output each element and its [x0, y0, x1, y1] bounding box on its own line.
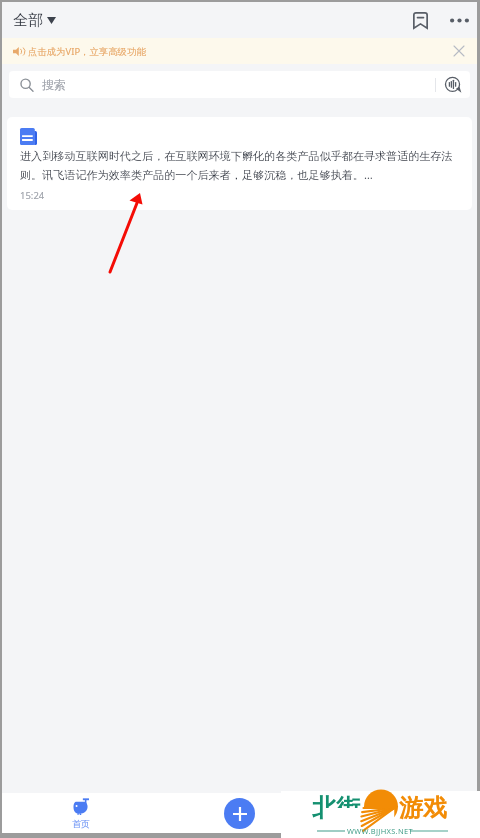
button[interactable]: 进入到移动互联网时代之后，在互联网环境下孵化的各类产品似乎都在寻求普适的生存法则… — [7, 117, 472, 210]
button[interactable]: Voice input — [436, 71, 470, 98]
staticText: 全部 — [13, 11, 43, 30]
button[interactable]: 搜索 — [9, 71, 470, 98]
button[interactable]: Close banner — [446, 38, 472, 64]
staticText: WWW.BJJHXS.NET — [347, 826, 413, 836]
staticText: 点击成为VIP，立享高级功能 — [28, 45, 146, 58]
button[interactable]: Bookmarks — [399, 2, 437, 38]
button[interactable]: 首页 — [2, 793, 160, 833]
staticText: 进入到移动互联网时代之后，在互联网环境下孵化的各类产品似乎都在寻求普适的生存法则… — [20, 149, 459, 182]
button[interactable]: 全部 — [2, 6, 66, 35]
staticText: 首页 — [72, 818, 90, 829]
button[interactable]: New note — [224, 798, 255, 829]
staticText: 搜索 — [42, 77, 66, 92]
staticText: 游戏 — [399, 793, 447, 823]
staticText: 15:24 — [20, 189, 45, 202]
button[interactable]: 点击成为VIP，立享高级功能 — [2, 38, 477, 64]
staticText: 北街 — [312, 793, 360, 823]
button[interactable]: More options — [437, 2, 477, 38]
